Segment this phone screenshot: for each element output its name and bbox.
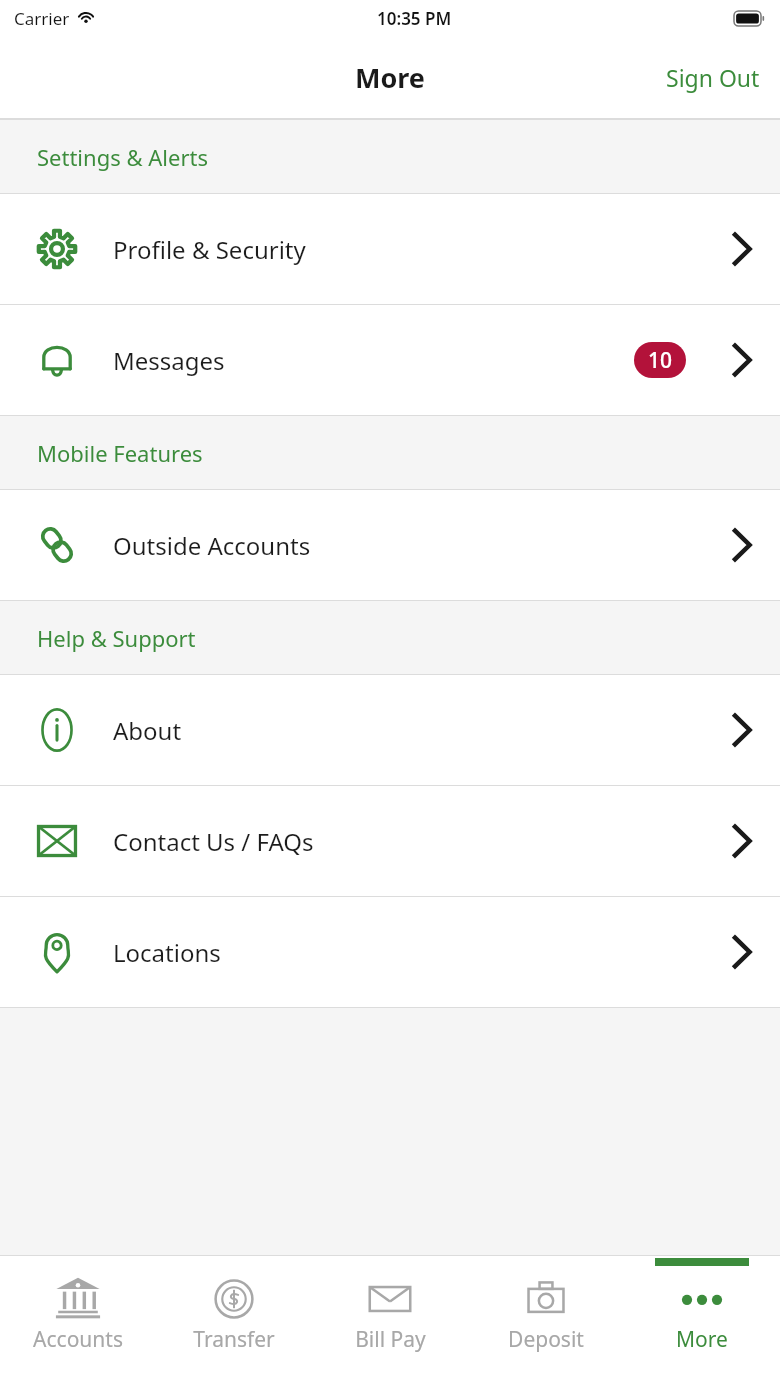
staticText: 10 [648, 346, 673, 375]
button[interactable]: Accounts [0, 1255, 156, 1387]
staticText: Deposit [508, 1325, 584, 1354]
button[interactable]: Transfer [156, 1255, 312, 1387]
staticText: Locations [113, 936, 221, 969]
button[interactable]: More [624, 1255, 780, 1387]
staticText: Bill Pay [355, 1325, 426, 1354]
staticText: Help & Support [37, 623, 196, 653]
staticText: Accounts [33, 1325, 123, 1354]
staticText: Messages [113, 344, 225, 377]
staticText: Sign Out [666, 62, 760, 93]
other: About [35, 708, 79, 752]
staticText: Contact Us / FAQs [113, 825, 314, 858]
button[interactable]: Sign Out [646, 50, 780, 105]
staticText: 10:35 PM [377, 7, 452, 30]
staticText: About [113, 714, 182, 747]
staticText: Outside Accounts [113, 529, 311, 562]
staticText: More [0, 59, 780, 96]
staticText: Carrier [14, 7, 70, 30]
other: Contact Us / FAQs [35, 819, 79, 863]
other: Outside Accounts [35, 523, 79, 567]
button[interactable]: Profile & Security [0, 194, 780, 304]
staticText: Transfer [193, 1325, 275, 1354]
button[interactable]: Locations [0, 897, 780, 1007]
other: Profile & Security [35, 227, 79, 271]
button[interactable]: Bill Pay [312, 1255, 468, 1387]
button[interactable]: Deposit [468, 1255, 624, 1387]
button[interactable]: Contact Us / FAQs [0, 786, 780, 896]
staticText: Profile & Security [113, 233, 306, 266]
button[interactable]: About [0, 675, 780, 785]
staticText: More [676, 1325, 728, 1354]
other: Locations [35, 930, 79, 974]
button[interactable]: Outside Accounts [0, 490, 780, 600]
other: Messages [35, 338, 79, 382]
staticText: Mobile Features [37, 438, 203, 468]
button[interactable]: Messages [0, 305, 780, 415]
staticText: Settings & Alerts [37, 142, 208, 172]
